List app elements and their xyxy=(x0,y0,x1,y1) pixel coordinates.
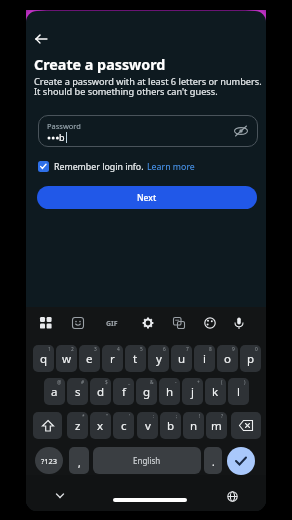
staticText: k xyxy=(212,384,219,400)
button[interactable]: GIF xyxy=(106,319,118,329)
staticText: d xyxy=(97,384,105,400)
staticText: ( xyxy=(221,379,223,386)
button[interactable] xyxy=(227,491,238,502)
staticText: r xyxy=(110,351,115,367)
staticText: ) xyxy=(244,379,246,386)
staticText: , xyxy=(78,456,81,470)
staticText: b xyxy=(167,418,175,434)
staticText: - xyxy=(175,379,177,386)
staticText: v xyxy=(145,418,151,434)
staticText: j xyxy=(191,384,194,400)
staticText: x xyxy=(97,418,104,434)
button[interactable] xyxy=(40,317,52,329)
button[interactable]: g xyxy=(136,378,157,405)
staticText: 9 xyxy=(232,346,235,353)
staticText: 0 xyxy=(255,346,258,353)
staticText: + xyxy=(197,379,200,386)
button[interactable]: f xyxy=(113,378,134,405)
button[interactable]: x xyxy=(90,412,111,439)
staticText: 1 xyxy=(48,346,51,353)
button[interactable] xyxy=(173,317,185,329)
staticText: o xyxy=(224,351,231,367)
button[interactable]: u xyxy=(171,345,192,372)
button[interactable]: Learn more xyxy=(147,161,195,172)
staticText: 6 xyxy=(163,346,166,353)
button[interactable]: i xyxy=(194,345,215,372)
button[interactable]: j xyxy=(182,378,203,405)
staticText: _ xyxy=(128,379,131,386)
staticText: ' xyxy=(129,413,131,420)
staticText: $ xyxy=(105,379,108,386)
staticText: " xyxy=(106,413,108,420)
button[interactable]: d xyxy=(90,378,111,405)
button[interactable]: . xyxy=(204,447,222,474)
button[interactable]: l xyxy=(228,378,249,405)
button[interactable]: English xyxy=(93,447,201,474)
staticText: ; xyxy=(176,413,178,420)
button[interactable]: w xyxy=(56,345,77,372)
staticText: z xyxy=(75,418,81,434)
button[interactable]: p xyxy=(240,345,261,372)
button[interactable]: , xyxy=(69,447,89,474)
staticText: English xyxy=(133,455,161,466)
button[interactable]: q xyxy=(33,345,54,372)
button[interactable]: ?123 xyxy=(35,447,63,474)
button[interactable]: c xyxy=(113,412,134,439)
button[interactable] xyxy=(55,492,65,500)
staticText: . xyxy=(212,455,215,469)
staticText: 8 xyxy=(209,346,212,353)
button[interactable] xyxy=(204,317,216,329)
button[interactable]: r xyxy=(102,345,123,372)
staticText: @ xyxy=(57,379,62,386)
button[interactable] xyxy=(72,317,84,329)
staticText: b xyxy=(59,131,65,143)
staticText: l xyxy=(237,384,240,400)
button[interactable]: Password xyxy=(38,115,258,147)
staticText: Password xyxy=(47,121,81,131)
staticText: p xyxy=(247,351,255,367)
button[interactable]: h xyxy=(159,378,180,405)
staticText: c xyxy=(121,418,127,434)
button[interactable]: y xyxy=(148,345,169,372)
staticText: 5 xyxy=(140,346,143,353)
button[interactable]: t xyxy=(125,345,146,372)
staticText: ! xyxy=(199,413,201,420)
button[interactable]: Next xyxy=(37,186,257,209)
button[interactable] xyxy=(33,31,51,47)
staticText: h xyxy=(166,384,174,400)
staticText: Remember login info. xyxy=(54,161,144,172)
button[interactable] xyxy=(113,498,187,502)
staticText: 3 xyxy=(94,346,97,353)
staticText: w xyxy=(62,351,72,367)
button[interactable] xyxy=(33,412,62,439)
staticText: # xyxy=(81,379,85,386)
staticText: * xyxy=(82,413,85,420)
button[interactable]: o xyxy=(217,345,238,372)
staticText: 2 xyxy=(71,346,74,353)
staticText: 7 xyxy=(186,346,189,353)
staticText: u xyxy=(178,351,186,367)
staticText: & xyxy=(150,379,154,386)
button[interactable] xyxy=(142,317,154,329)
button[interactable]: k xyxy=(205,378,226,405)
button[interactable]: a xyxy=(44,378,65,405)
staticText: a xyxy=(51,384,58,400)
button[interactable]: z xyxy=(67,412,88,439)
staticText: e xyxy=(86,351,93,367)
staticText: m xyxy=(211,418,222,434)
button[interactable]: b xyxy=(160,412,181,439)
staticText: y xyxy=(156,351,162,367)
button[interactable] xyxy=(234,317,244,330)
staticText: t xyxy=(133,351,138,367)
button[interactable]: Remember login info. xyxy=(38,161,195,172)
button[interactable]: e xyxy=(79,345,100,372)
button[interactable]: m xyxy=(206,412,227,439)
button[interactable] xyxy=(231,412,261,439)
staticText: i xyxy=(203,351,206,367)
button[interactable]: n xyxy=(183,412,204,439)
button[interactable]: s xyxy=(67,378,88,405)
staticText: n xyxy=(190,418,198,434)
button[interactable] xyxy=(227,447,255,475)
button[interactable]: v xyxy=(137,412,158,439)
staticText: 4 xyxy=(117,346,120,353)
